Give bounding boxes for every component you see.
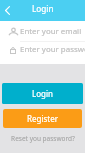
staticText: Login: [32, 88, 53, 99]
staticText: Register: [27, 113, 59, 124]
button[interactable]: Enter your password: [0, 41, 85, 58]
button[interactable]: Back: [0, 0, 15, 21]
button[interactable]: Register: [3, 109, 82, 128]
staticText: Enter your password: [20, 44, 85, 55]
staticText: Enter your email: [20, 26, 82, 37]
button[interactable]: Enter your email: [0, 21, 85, 42]
staticText: Login: [32, 3, 54, 14]
button[interactable]: Reset you password?: [11, 134, 75, 143]
button[interactable]: Login: [2, 83, 83, 104]
